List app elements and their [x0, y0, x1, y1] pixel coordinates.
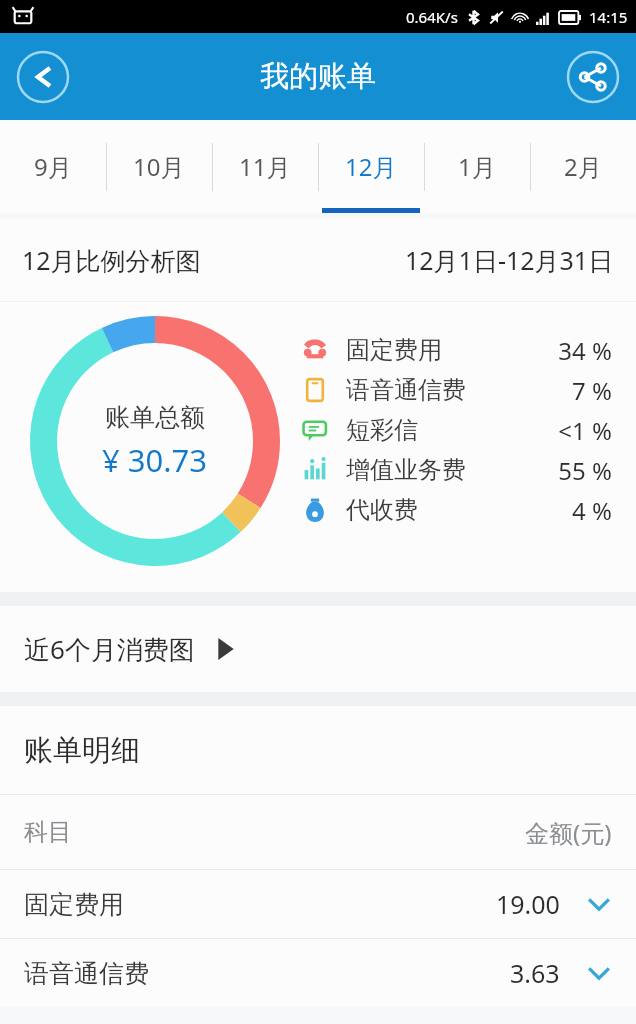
- staticText: 1月: [458, 150, 496, 183]
- staticText: 我的账单: [260, 58, 376, 95]
- button[interactable]: 12月: [318, 120, 424, 213]
- staticText: 19.00: [496, 887, 560, 921]
- staticText: 语音通信费: [24, 958, 149, 989]
- button[interactable]: 10月: [106, 120, 212, 213]
- staticText: 14:15: [589, 7, 628, 27]
- staticText: 金额(元): [525, 816, 612, 849]
- button[interactable]: 近6个月消费图: [0, 606, 636, 692]
- button[interactable]: 2月: [530, 120, 636, 213]
- staticText: 10月: [133, 150, 185, 183]
- staticText: ¥ 30.73: [102, 439, 208, 481]
- button[interactable]: Share: [566, 50, 620, 104]
- staticText: 短彩信: [346, 415, 418, 445]
- staticText: 7 %: [572, 374, 612, 407]
- staticText: 34 %: [558, 334, 612, 367]
- staticText: 账单总额: [105, 402, 205, 433]
- staticText: <1 %: [558, 414, 612, 447]
- staticText: 固定费用: [346, 335, 442, 365]
- staticText: 语音通信费: [346, 375, 466, 405]
- staticText: 代收费: [346, 495, 418, 525]
- staticText: 3.63: [510, 956, 560, 990]
- staticText: 增值业务费: [346, 455, 466, 485]
- staticText: 55 %: [558, 454, 612, 487]
- staticText: 9月: [34, 150, 72, 183]
- staticText: 12月: [345, 150, 397, 183]
- button[interactable]: 11月: [212, 120, 318, 213]
- button[interactable]: 1月: [424, 120, 530, 213]
- button[interactable]: 语音通信费: [0, 939, 636, 1007]
- button[interactable]: Back: [16, 50, 70, 104]
- button[interactable]: 固定费用: [0, 870, 636, 938]
- button[interactable]: 9月: [0, 120, 106, 213]
- staticText: 11月: [239, 150, 291, 183]
- staticText: 科目: [24, 817, 72, 847]
- staticText: 4 %: [572, 494, 612, 527]
- staticText: 12月1日-12月31日: [405, 243, 614, 277]
- staticText: 近6个月消费图: [24, 631, 195, 667]
- staticText: 2月: [564, 150, 602, 183]
- staticText: 账单明细: [24, 732, 140, 769]
- staticText: 固定费用: [24, 889, 124, 920]
- staticText: 12月比例分析图: [22, 243, 201, 277]
- staticText: 0.64K/s: [406, 7, 458, 27]
